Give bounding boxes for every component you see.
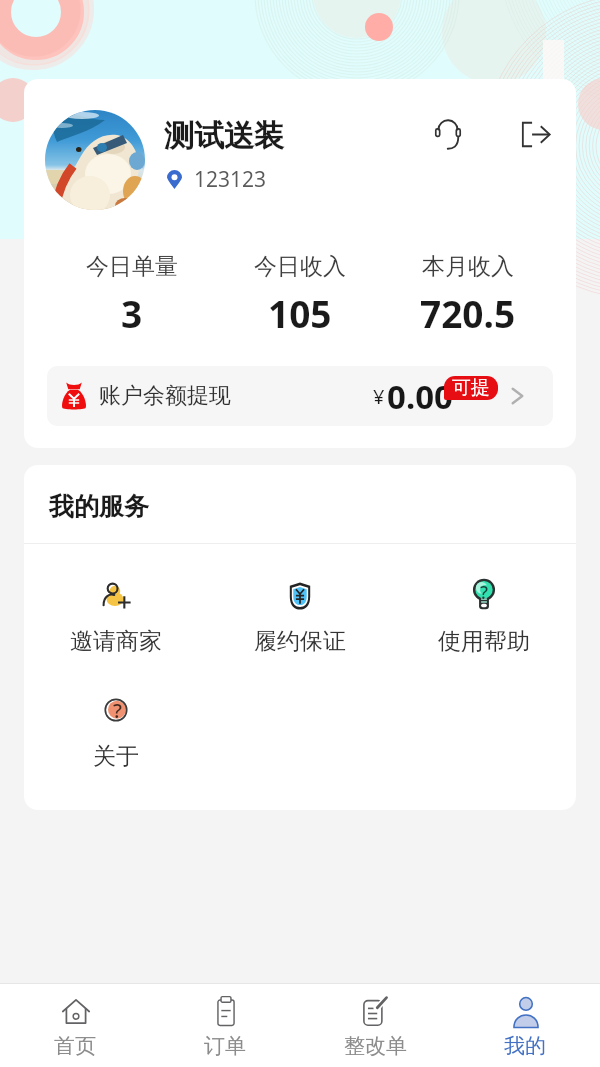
staticText: 105 [268, 288, 332, 338]
staticText: 今日收入 [254, 252, 346, 281]
staticText: 123123 [194, 165, 267, 194]
staticText: 我的服务 [49, 491, 149, 522]
staticText: 0.00 [387, 374, 453, 419]
staticText: 720.5 [420, 288, 516, 338]
staticText: 测试送装 [164, 117, 284, 155]
staticText: 首页 [54, 1033, 96, 1059]
staticText: 今日单量 [86, 252, 178, 281]
button[interactable]: 订单 [150, 992, 300, 1059]
staticText: 整改单 [344, 1033, 407, 1059]
staticText: 本月收入 [422, 252, 514, 281]
button[interactable]: 退出登录 [514, 112, 558, 156]
staticText: 邀请商家 [70, 627, 162, 656]
staticText: 订单 [204, 1033, 246, 1059]
staticText: ? [113, 697, 122, 724]
button[interactable]: 我的 [450, 992, 600, 1059]
staticText: 3 [121, 288, 143, 338]
button[interactable]: 整改单 [300, 992, 450, 1059]
button[interactable]: 首页 [0, 992, 150, 1059]
staticText: 使用帮助 [438, 627, 530, 656]
staticText: 我的 [504, 1033, 546, 1059]
button[interactable]: 客服 [426, 112, 470, 156]
staticText: 账户余额提现 [99, 382, 231, 410]
button[interactable]: ? [392, 578, 576, 656]
button[interactable]: 账户余额提现 [47, 366, 553, 426]
staticText: 可提 [452, 376, 490, 400]
button[interactable]: ? [24, 693, 208, 771]
staticText: 履约保证 [254, 627, 346, 656]
staticText: ¥ [373, 383, 385, 410]
staticText: 关于 [93, 742, 139, 771]
button[interactable]: 履约保证 [208, 578, 392, 656]
staticText: ? [480, 580, 489, 605]
button[interactable]: 邀请商家 [24, 578, 208, 656]
